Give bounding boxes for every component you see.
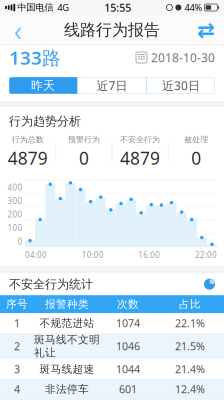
staticText: 0 — [191, 147, 201, 170]
staticText: 400 — [7, 182, 22, 193]
staticText: 1 — [14, 316, 20, 330]
staticText: 133路 — [9, 45, 61, 70]
staticText: 昨天 — [31, 78, 55, 93]
staticText: 被处理 — [184, 135, 208, 144]
button[interactable]: 2 — [0, 333, 224, 359]
staticText: 100 — [7, 222, 22, 233]
staticText: 601 — [119, 382, 137, 396]
staticText: 不安全行为统计 — [9, 277, 93, 291]
staticText: 21.5% — [175, 339, 205, 353]
staticText: 15:55 — [104, 0, 131, 15]
staticText: 非法停车 — [45, 383, 89, 396]
staticText: ⇄ — [197, 18, 215, 42]
button[interactable]: 图表视图 — [204, 279, 215, 290]
staticText: 占比 — [179, 298, 201, 311]
staticText: 不规范进站 — [39, 317, 94, 330]
button[interactable]: 切换 — [188, 15, 224, 45]
staticText: 0 — [79, 147, 89, 170]
button[interactable]: 近7日 — [78, 77, 146, 94]
button[interactable]: 近30日 — [147, 77, 215, 94]
staticText: 近30日 — [162, 77, 200, 93]
button[interactable]: 返回 — [0, 15, 36, 45]
staticText: 行为总数 — [12, 135, 44, 144]
staticText: 报警种类 — [45, 298, 89, 311]
staticText: 斑马线不文明 礼让 — [34, 333, 100, 359]
staticText: 22.1% — [175, 316, 205, 330]
staticText: 中国电信 — [17, 2, 53, 13]
staticText: 线路行为报告 — [64, 20, 160, 40]
button[interactable]: 4 — [0, 379, 224, 399]
staticText: 3 — [14, 362, 20, 376]
staticText: 16:00 — [138, 250, 160, 260]
staticText: 1046 — [116, 339, 140, 353]
staticText: 序号 — [6, 298, 28, 311]
staticText: 2018-10-30 — [151, 49, 215, 65]
staticText: 300 — [7, 195, 22, 206]
staticText: 1074 — [116, 316, 140, 330]
staticText: 0 — [17, 236, 22, 247]
staticText: 12.4% — [175, 382, 205, 396]
staticText: 4 — [14, 382, 20, 396]
button[interactable]: 3 — [0, 359, 224, 379]
staticText: 次数 — [117, 298, 139, 311]
button[interactable]: 昨天 — [9, 77, 77, 94]
staticText: 斑马线超速 — [39, 363, 94, 376]
staticText: 200 — [7, 209, 22, 220]
button[interactable]: 1 — [0, 313, 224, 333]
staticText: 近7日 — [96, 77, 127, 93]
staticText: 不安全行为 — [120, 135, 160, 144]
staticText: 4G — [57, 1, 69, 14]
staticText: 44% — [184, 1, 202, 14]
button[interactable]: 2018-10-30 — [136, 49, 215, 65]
staticText: 1044 — [116, 362, 140, 376]
staticText: 22:00 — [195, 250, 217, 260]
staticText: 10:00 — [82, 250, 104, 260]
staticText: 行为趋势分析 — [9, 114, 81, 129]
staticText: 2 — [14, 339, 20, 353]
staticText: ‹ — [14, 10, 22, 49]
staticText: 04:00 — [25, 250, 47, 260]
staticText: 4879 — [8, 147, 48, 170]
staticText: 4879 — [120, 147, 160, 170]
staticText: 预警行为 — [68, 135, 100, 144]
staticText: 21.4% — [175, 362, 205, 376]
